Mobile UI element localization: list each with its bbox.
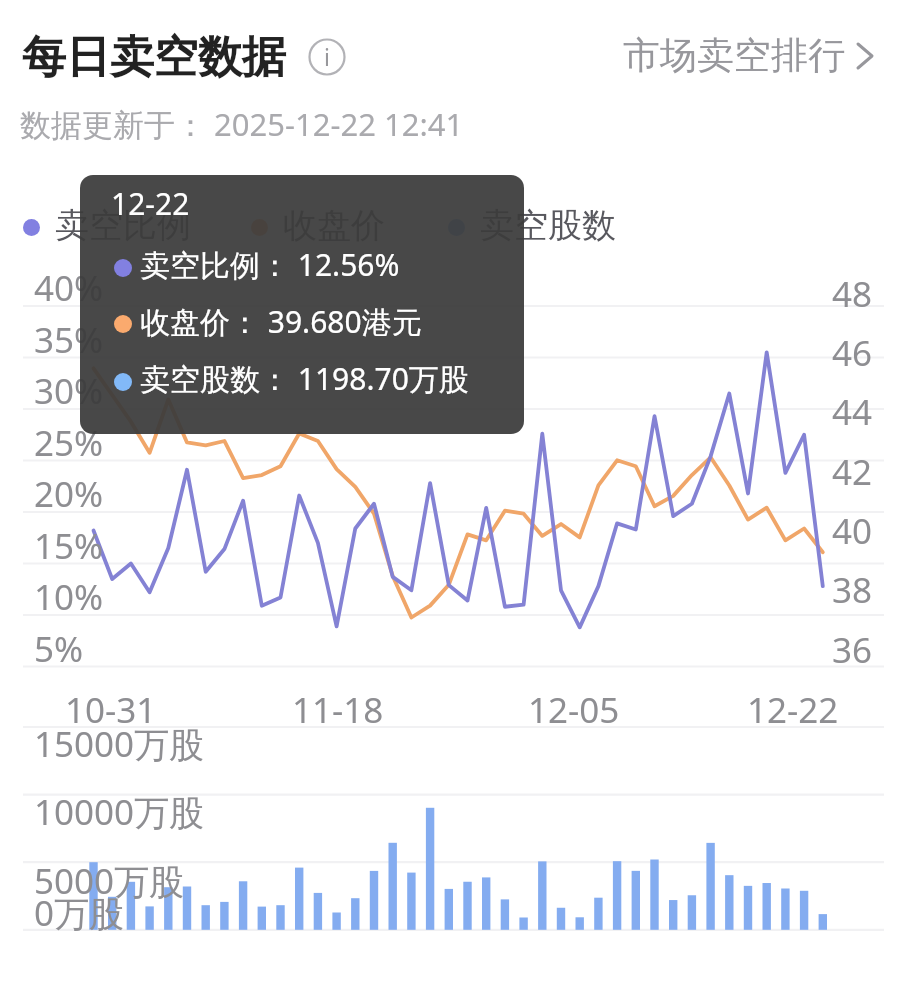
button[interactable] bbox=[23, 219, 40, 236]
button[interactable] bbox=[448, 219, 465, 236]
staticText: 40% bbox=[34, 264, 104, 312]
staticText: 数据更新于： 2025-12-22 12:41 bbox=[20, 103, 464, 145]
staticText: 38 bbox=[832, 566, 873, 614]
staticText: 30% bbox=[34, 367, 104, 415]
staticText: 36 bbox=[832, 626, 873, 674]
staticText: 10000万股 bbox=[34, 788, 205, 836]
staticText: 每日卖空数据 bbox=[22, 30, 286, 85]
staticText: 35% bbox=[34, 316, 104, 364]
button[interactable]: 卖空比例 bbox=[55, 204, 191, 247]
staticText: 5% bbox=[34, 625, 84, 673]
staticText: 卖空股数 bbox=[480, 204, 616, 247]
staticText: 48 bbox=[832, 270, 873, 318]
staticText: 卖空比例 bbox=[55, 204, 191, 247]
staticText: 12-22 bbox=[111, 183, 190, 224]
staticText: 卖空股数： 1198.70万股 bbox=[140, 358, 469, 399]
staticText: 15000万股 bbox=[34, 720, 205, 768]
button[interactable]: 每日卖空数据 bbox=[22, 30, 286, 85]
staticText: 0万股 bbox=[34, 889, 125, 937]
staticText: 20% bbox=[34, 470, 104, 518]
staticText: 卖空比例： 12.56% bbox=[140, 244, 400, 285]
button[interactable]: 收盘价 bbox=[283, 204, 385, 247]
staticText: 10% bbox=[34, 573, 104, 621]
staticText: 12-22 bbox=[747, 686, 839, 734]
button[interactable]: 数据说明 bbox=[308, 38, 346, 76]
staticText: 12-05 bbox=[528, 686, 620, 734]
staticText: 40 bbox=[832, 507, 873, 555]
staticText: i bbox=[324, 41, 330, 72]
button[interactable] bbox=[251, 219, 268, 236]
staticText: 42 bbox=[832, 448, 873, 496]
button[interactable]: 市场卖空排行 bbox=[623, 32, 878, 79]
staticText: 10-31 bbox=[65, 686, 157, 734]
staticText: 收盘价： 39.680港元 bbox=[140, 301, 422, 342]
staticText: 25% bbox=[34, 419, 104, 467]
staticText: 市场卖空排行 bbox=[623, 32, 845, 79]
staticText: 5000万股 bbox=[34, 857, 185, 905]
staticText: 11-18 bbox=[292, 686, 384, 734]
staticText: 46 bbox=[832, 329, 873, 377]
button[interactable]: 卖空股数 bbox=[480, 204, 616, 247]
staticText: 收盘价 bbox=[283, 204, 385, 247]
staticText: 15% bbox=[34, 522, 104, 570]
staticText: 44 bbox=[832, 388, 873, 436]
